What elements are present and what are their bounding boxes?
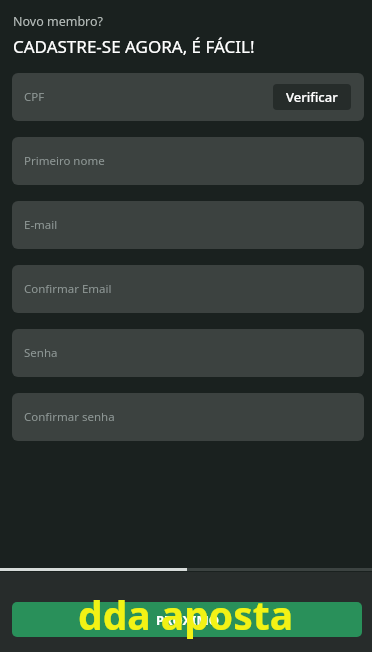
staticText: Primeiro nome bbox=[24, 153, 105, 169]
button[interactable]: Confirmar senha bbox=[12, 393, 364, 441]
staticText: Confirmar Email bbox=[24, 281, 112, 297]
staticText: Verificar bbox=[286, 88, 338, 106]
staticText: PRÓXIMO bbox=[156, 611, 219, 629]
staticText: CPF bbox=[24, 89, 45, 105]
staticText: E-mail bbox=[24, 217, 58, 233]
button[interactable]: Senha bbox=[12, 329, 364, 377]
button[interactable]: CPF bbox=[12, 73, 364, 121]
staticText: Novo membro? bbox=[13, 13, 103, 30]
staticText: CADASTRE-SE AGORA, É FÁCIL! bbox=[13, 35, 255, 58]
staticText: Senha bbox=[24, 345, 58, 361]
button[interactable]: Confirmar Email bbox=[12, 265, 364, 313]
staticText: dda aposta bbox=[78, 588, 294, 641]
button[interactable]: Verificar bbox=[273, 84, 351, 110]
staticText: Confirmar senha bbox=[24, 409, 115, 425]
other: Progresso do cadastro bbox=[0, 568, 372, 571]
button[interactable]: PRÓXIMO bbox=[12, 602, 362, 637]
button[interactable]: Primeiro nome bbox=[12, 137, 364, 185]
button[interactable]: E-mail bbox=[12, 201, 364, 249]
